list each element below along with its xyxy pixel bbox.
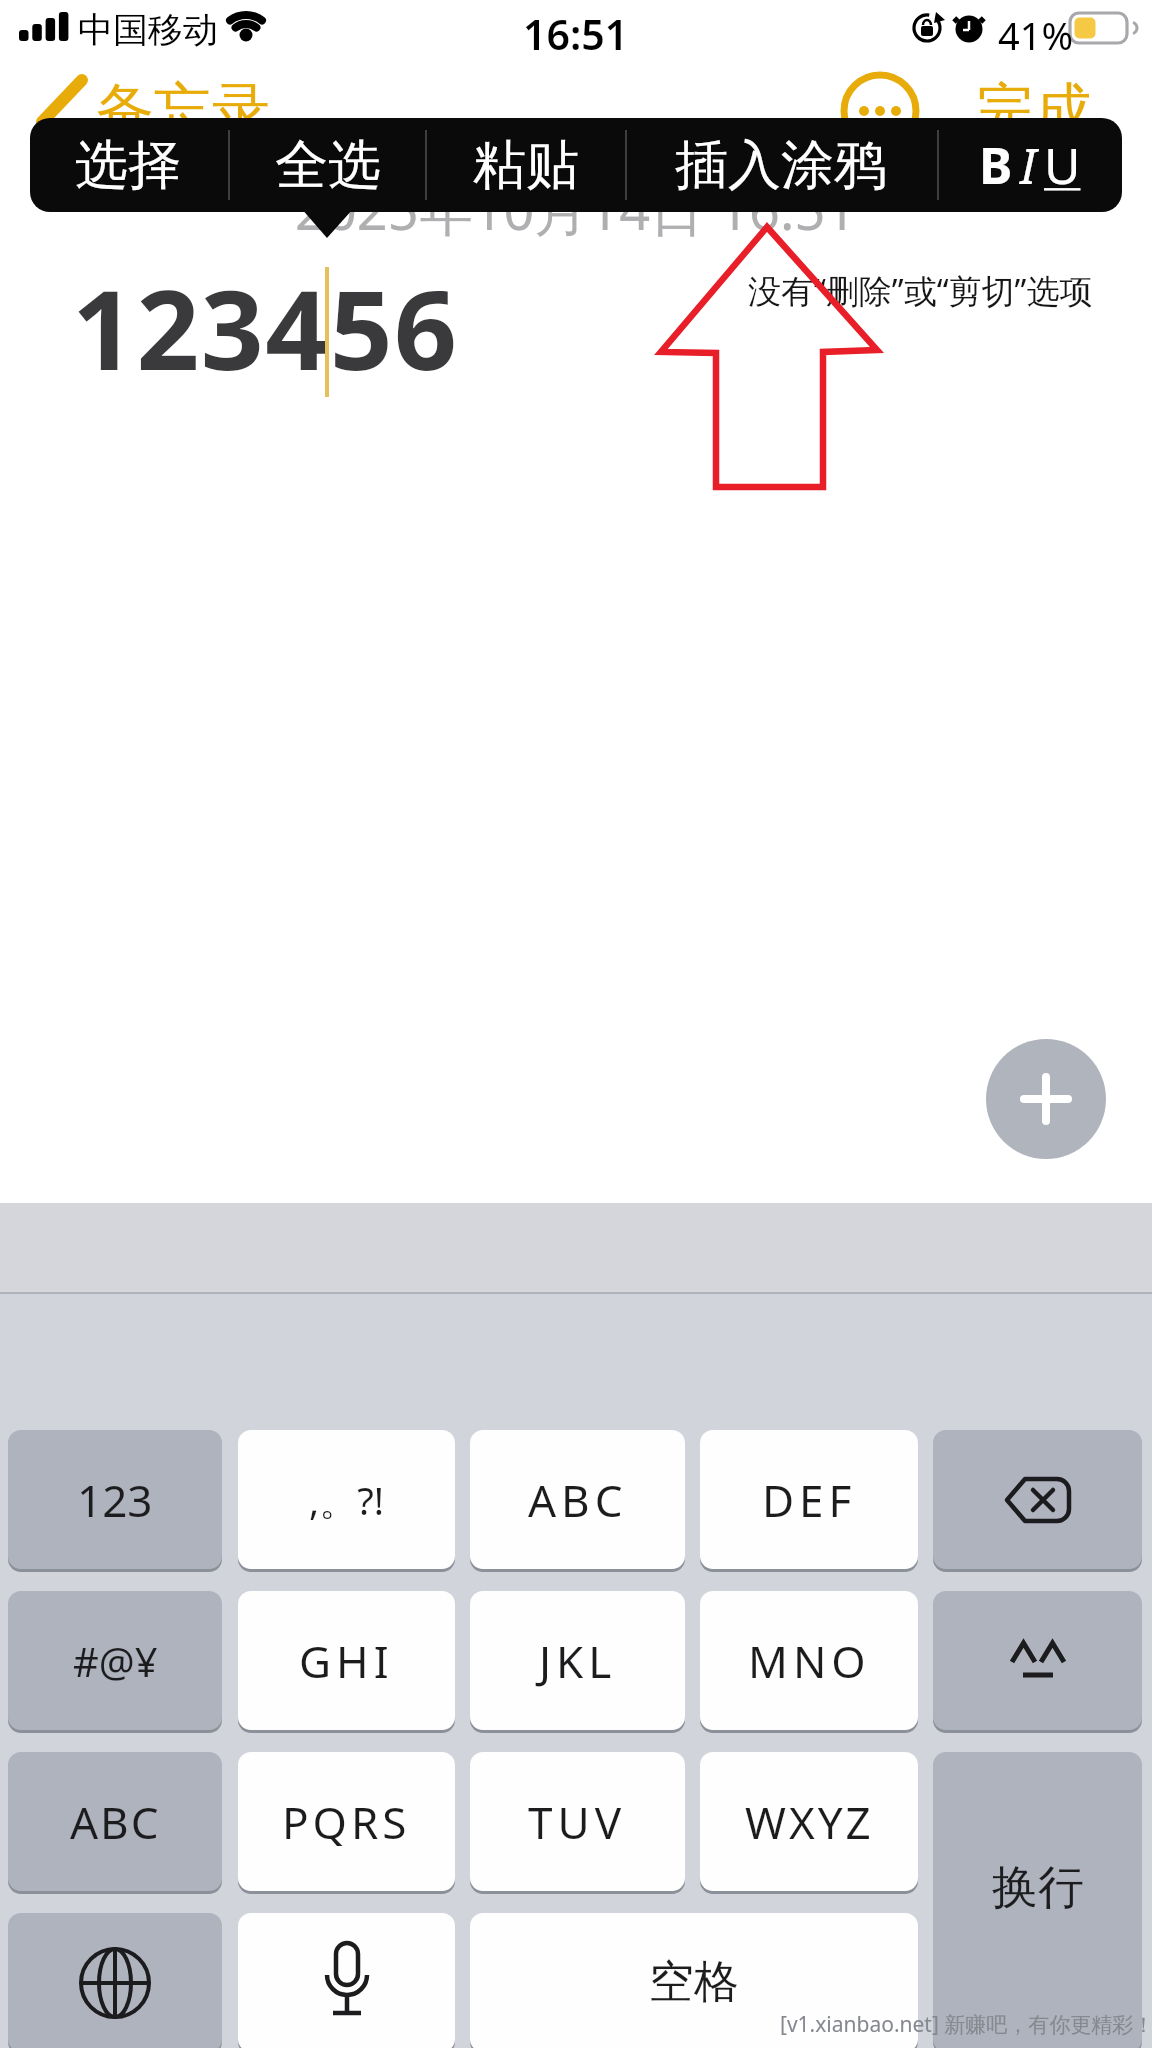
button[interactable]: GHI <box>238 1591 455 1730</box>
staticText: B <box>979 131 1013 199</box>
staticText: 全选 <box>275 132 381 199</box>
button[interactable]: 空格 <box>470 1913 918 2048</box>
button[interactable] <box>238 1913 455 2048</box>
button[interactable]: WXYZ <box>700 1752 918 1891</box>
button[interactable] <box>933 1591 1142 1730</box>
staticText: [v1.xianbao.net] 新赚吧，有你更精彩！ <box>780 2010 1152 2039</box>
staticText: 备忘录 <box>96 74 270 147</box>
button[interactable] <box>986 1039 1106 1159</box>
button[interactable] <box>8 1913 222 2048</box>
button[interactable]: 选择 <box>33 118 223 212</box>
staticText: U <box>1044 131 1081 199</box>
staticText: I <box>1020 131 1037 199</box>
staticText: ABC <box>528 1470 628 1530</box>
button[interactable]: B <box>937 118 1122 212</box>
staticText: ABC <box>70 1792 161 1852</box>
staticText: 换行 <box>992 1859 1084 1917</box>
staticText: MNO <box>748 1631 871 1691</box>
staticText: 123 <box>77 1470 153 1530</box>
button[interactable]: JKL <box>470 1591 685 1730</box>
staticText: PQRS <box>282 1792 411 1852</box>
staticText: 没有“删除”或“剪切”选项 <box>748 268 1093 313</box>
button[interactable]: ,。?! <box>238 1430 455 1569</box>
button[interactable]: 换行 <box>933 1752 1142 2048</box>
button[interactable]: TUV <box>470 1752 685 1891</box>
button[interactable]: ABC <box>470 1430 685 1569</box>
button[interactable]: DEF <box>700 1430 918 1569</box>
staticText: 完成 <box>976 74 1092 147</box>
staticText: 选择 <box>75 132 181 199</box>
button[interactable]: ABC <box>8 1752 222 1891</box>
button[interactable]: PQRS <box>238 1752 455 1891</box>
button[interactable]: #@¥ <box>8 1591 222 1730</box>
staticText: DEF <box>762 1470 857 1530</box>
staticText: 粘贴 <box>473 132 579 199</box>
staticText: JKL <box>539 1631 617 1691</box>
staticText: 123456 <box>72 252 459 402</box>
button[interactable]: 粘贴 <box>427 118 625 212</box>
staticText: #@¥ <box>73 1634 158 1688</box>
button[interactable] <box>933 1430 1142 1569</box>
staticText: ,。?! <box>309 1474 384 1526</box>
staticText: 空格 <box>649 1954 739 2011</box>
staticText: 插入涂鸦 <box>675 132 887 199</box>
staticText: WXYZ <box>745 1792 874 1852</box>
staticText: 中国移动 <box>78 8 218 52</box>
staticText: TUV <box>528 1792 627 1852</box>
button[interactable]: 123 <box>8 1430 222 1569</box>
button[interactable]: 全选 <box>230 118 425 212</box>
staticText: 2025年10月14日 16:51 <box>295 172 857 246</box>
staticText: GHI <box>299 1631 394 1691</box>
button[interactable]: MNO <box>700 1591 918 1730</box>
staticText: 41% <box>998 9 1074 61</box>
button[interactable]: 插入涂鸦 <box>627 118 935 212</box>
staticText: 16:51 <box>523 6 629 62</box>
